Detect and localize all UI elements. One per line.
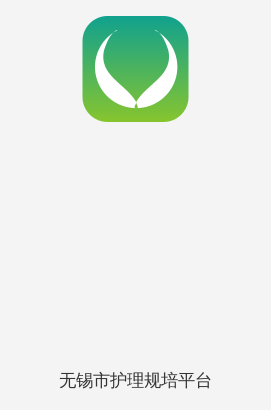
staticText: 无锡市护理规培平台 — [59, 370, 212, 391]
